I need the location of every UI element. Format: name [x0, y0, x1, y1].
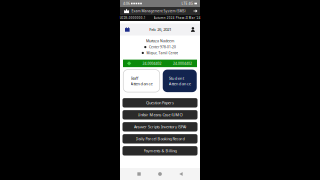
staticText: Autumn 2024 Phase-II Mar '24 [154, 16, 201, 20]
staticText: Student Attendance [169, 75, 191, 86]
staticText: 24-0004402 [143, 61, 162, 66]
staticText: 24-0004402 [173, 61, 192, 66]
button[interactable]: Unfair Means Case (UMC) [122, 110, 197, 119]
button[interactable]: Daily Parcel Booking Record [122, 134, 197, 143]
staticText: Answer Scripts Inventory (SPA) [134, 124, 186, 129]
button[interactable]: Log out [193, 9, 197, 13]
button[interactable]: Recents [137, 172, 141, 176]
button[interactable]: Profile [191, 27, 195, 32]
button[interactable]: Calendar [125, 27, 130, 32]
button[interactable]: Payments & Billing [122, 146, 197, 155]
button[interactable]: Student Attendance [163, 70, 197, 92]
staticText: Payments & Billing [143, 148, 176, 153]
button[interactable]: Answer Scripts Inventory (SPA) [122, 122, 197, 131]
button[interactable]: Back [179, 172, 183, 176]
button[interactable]: Question Papers [122, 98, 197, 107]
staticText: Exam Management System (SMS) [131, 9, 185, 13]
staticText: Staff Attendance [130, 75, 152, 86]
staticText: Unfair Means Case (UMC) [137, 112, 182, 117]
staticText: Center 978-01-20 [149, 45, 176, 49]
button[interactable]: Staff Attendance [123, 70, 160, 92]
staticText: 4:06 [123, 1, 130, 6]
staticText: Feb 26, 2021 [149, 27, 171, 32]
staticText: Daily Parcel Booking Record [135, 136, 184, 141]
staticText: LTE 4G [181, 1, 193, 6]
staticText: UCDS-0000000-1 [120, 16, 146, 20]
staticText: Murtaza Nadeem [146, 38, 174, 43]
staticText: Mirpur, Tamil Centre [146, 51, 178, 55]
staticText: Question Papers [146, 100, 174, 105]
button[interactable]: Home [158, 172, 162, 176]
